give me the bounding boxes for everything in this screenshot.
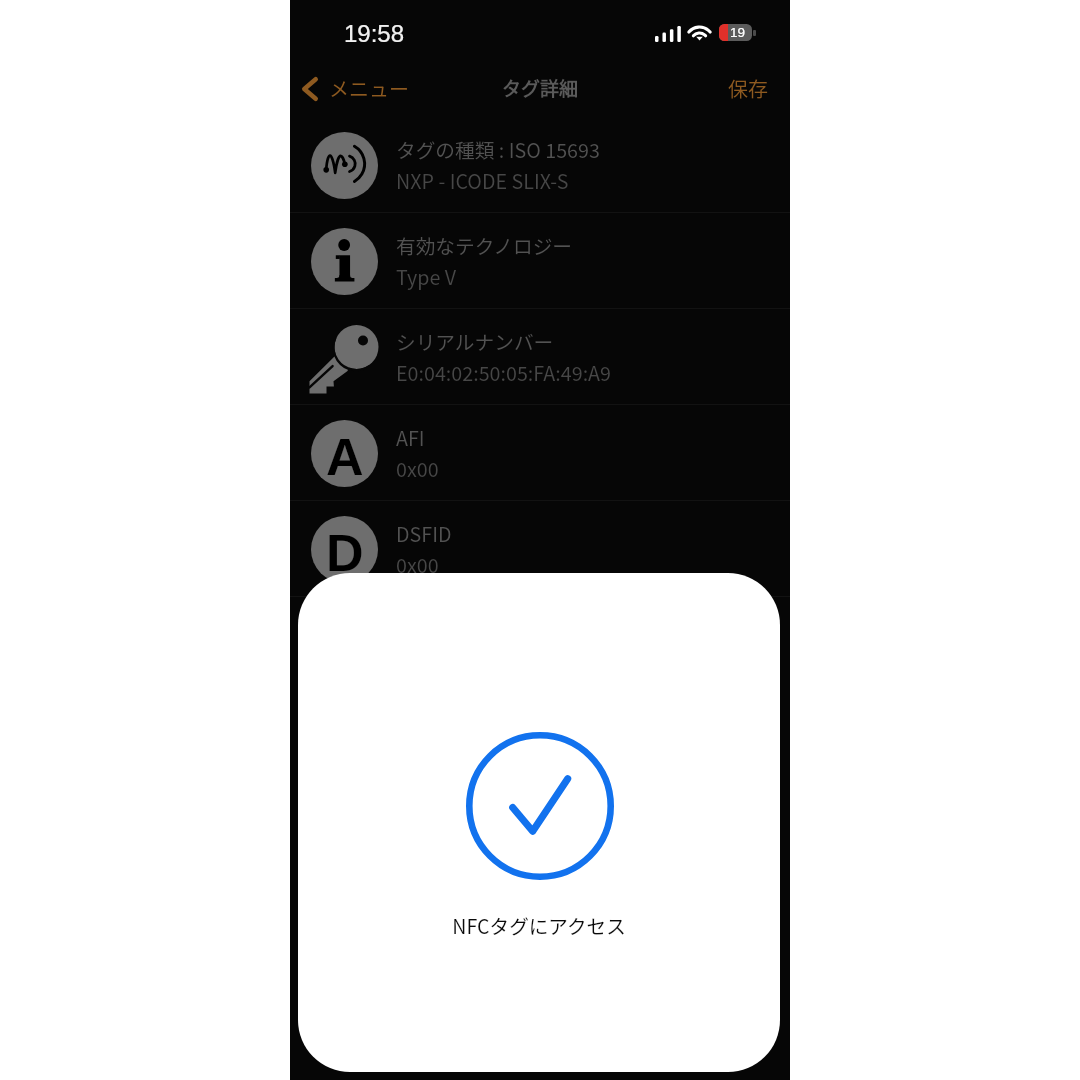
other: Tag type: [311, 132, 378, 199]
button[interactable]: メニュー: [290, 67, 419, 110]
staticText: タグの種類 : ISO 15693: [396, 135, 600, 164]
staticText: メニュー: [329, 74, 409, 103]
staticText: NXP - ICODE SLIX-S: [396, 166, 569, 195]
staticText: 有効なテクノロジー: [396, 231, 573, 260]
button[interactable]: D: [290, 501, 790, 597]
staticText: 0x00: [396, 550, 439, 579]
staticText: A: [326, 428, 364, 486]
button[interactable]: Tag type: [290, 117, 790, 213]
staticText: 0x00: [396, 454, 439, 483]
staticText: 19: [730, 25, 746, 40]
staticText: DSFID: [396, 519, 452, 548]
other: Information: [311, 228, 378, 295]
staticText: AFI: [396, 423, 425, 452]
staticText: シリアルナンバー: [396, 327, 554, 356]
staticText: 19:58: [344, 20, 405, 47]
button[interactable]: Information: [290, 213, 790, 309]
staticText: タグ詳細: [502, 74, 579, 102]
button[interactable]: Serial number: [290, 309, 790, 405]
staticText: Type V: [396, 262, 457, 291]
other: Serial number: [304, 317, 384, 397]
staticText: E0:04:02:50:05:FA:49:A9: [396, 358, 612, 387]
staticText: NFCタグにアクセス: [298, 911, 780, 939]
button[interactable]: 保存: [710, 67, 790, 110]
staticText: D: [326, 524, 364, 582]
button[interactable]: A: [290, 405, 790, 501]
